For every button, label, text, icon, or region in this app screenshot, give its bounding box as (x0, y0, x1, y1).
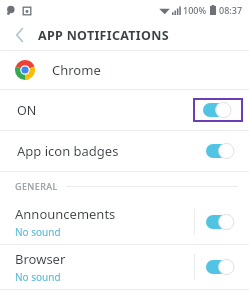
staticText: APP NOTIFICATIONS (38, 27, 169, 44)
button[interactable]: App icon badges (0, 131, 249, 171)
button[interactable]: Back (8, 23, 32, 47)
staticText: Browser (15, 250, 66, 268)
staticText: No sound (15, 225, 61, 239)
staticText: ON (17, 102, 37, 119)
staticText: 100% (183, 4, 207, 16)
staticText: App icon badges (17, 142, 119, 160)
button[interactable]: Browser switch (204, 256, 238, 278)
staticText: No sound (15, 270, 61, 284)
button[interactable]: Notifications on (195, 100, 241, 120)
button[interactable]: App icon badges (204, 140, 238, 162)
button[interactable]: Announcements (0, 200, 249, 244)
button[interactable]: Chrome (0, 51, 249, 89)
button[interactable]: Browser (0, 245, 249, 289)
staticText: 08:37 (219, 4, 243, 16)
button[interactable]: Announcements switch (204, 211, 238, 233)
button[interactable]: ON (0, 90, 249, 130)
staticText: Announcements (15, 205, 116, 223)
staticText: GENERAL (15, 180, 58, 192)
staticText: Chrome (52, 61, 101, 79)
